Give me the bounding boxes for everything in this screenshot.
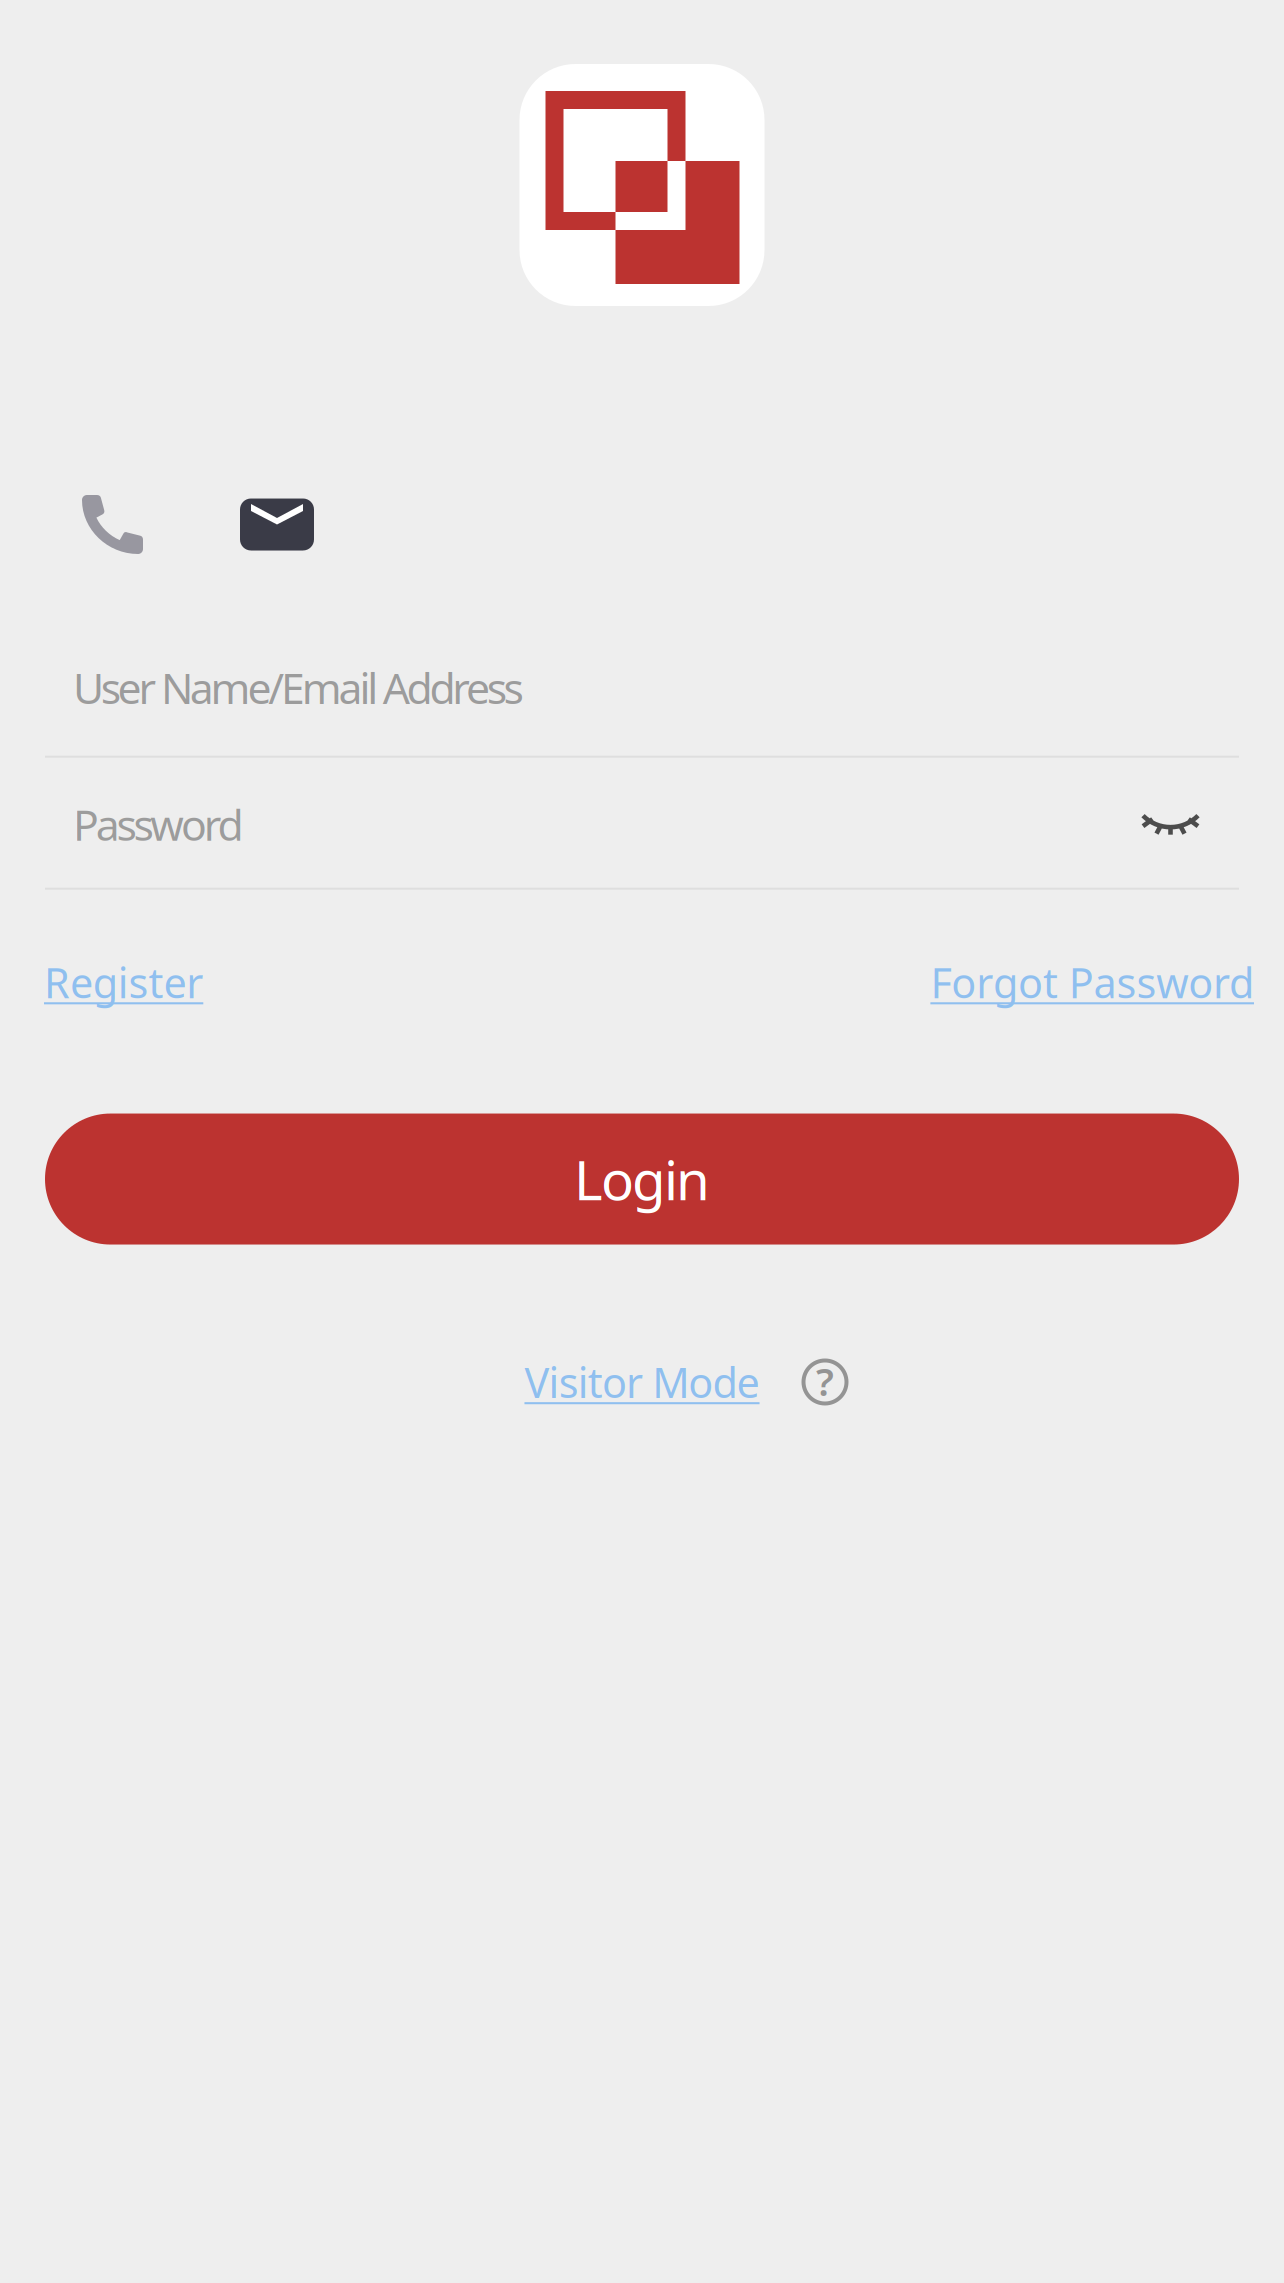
staticText: Register: [44, 955, 203, 1010]
button[interactable]: Phone login: [82, 495, 143, 554]
staticText: Forgot Password: [930, 955, 1254, 1010]
button[interactable]: Forgot Password: [930, 955, 1254, 1010]
button[interactable]: Login: [45, 1113, 1239, 1244]
staticText: ?: [816, 1355, 834, 1407]
button[interactable]: Visitor Mode: [524, 1354, 760, 1409]
button[interactable]: Show password: [1140, 796, 1239, 853]
button[interactable]: Register: [44, 955, 203, 1010]
button[interactable]: Email login: [240, 495, 314, 554]
staticText: Login: [574, 1143, 710, 1215]
button[interactable]: Help: [802, 1359, 848, 1405]
staticText: Password: [73, 796, 244, 852]
staticText: User Name/Email Address: [73, 659, 524, 716]
staticText: Visitor Mode: [524, 1354, 760, 1409]
